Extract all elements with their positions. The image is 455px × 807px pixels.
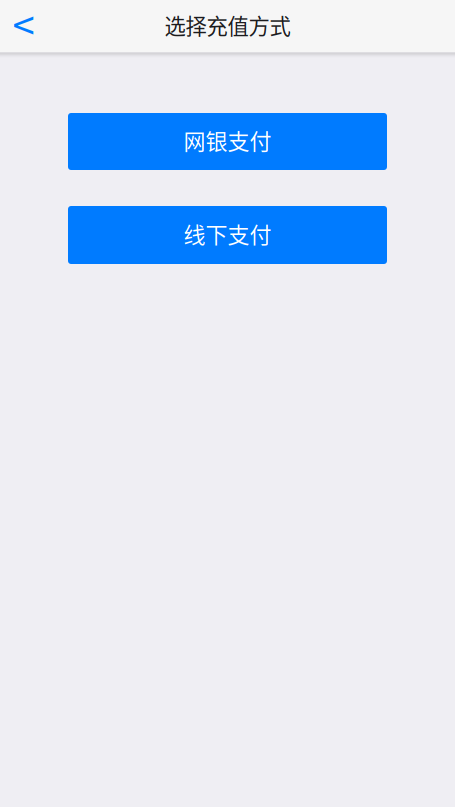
button[interactable]: 线下支付 bbox=[68, 206, 387, 264]
staticText: < bbox=[12, 0, 34, 52]
staticText: 选择充值方式 bbox=[164, 10, 290, 40]
button[interactable]: Back bbox=[0, 0, 47, 52]
staticText: 线下支付 bbox=[183, 218, 271, 249]
staticText: 网银支付 bbox=[183, 124, 271, 156]
button[interactable]: 网银支付 bbox=[68, 113, 387, 170]
